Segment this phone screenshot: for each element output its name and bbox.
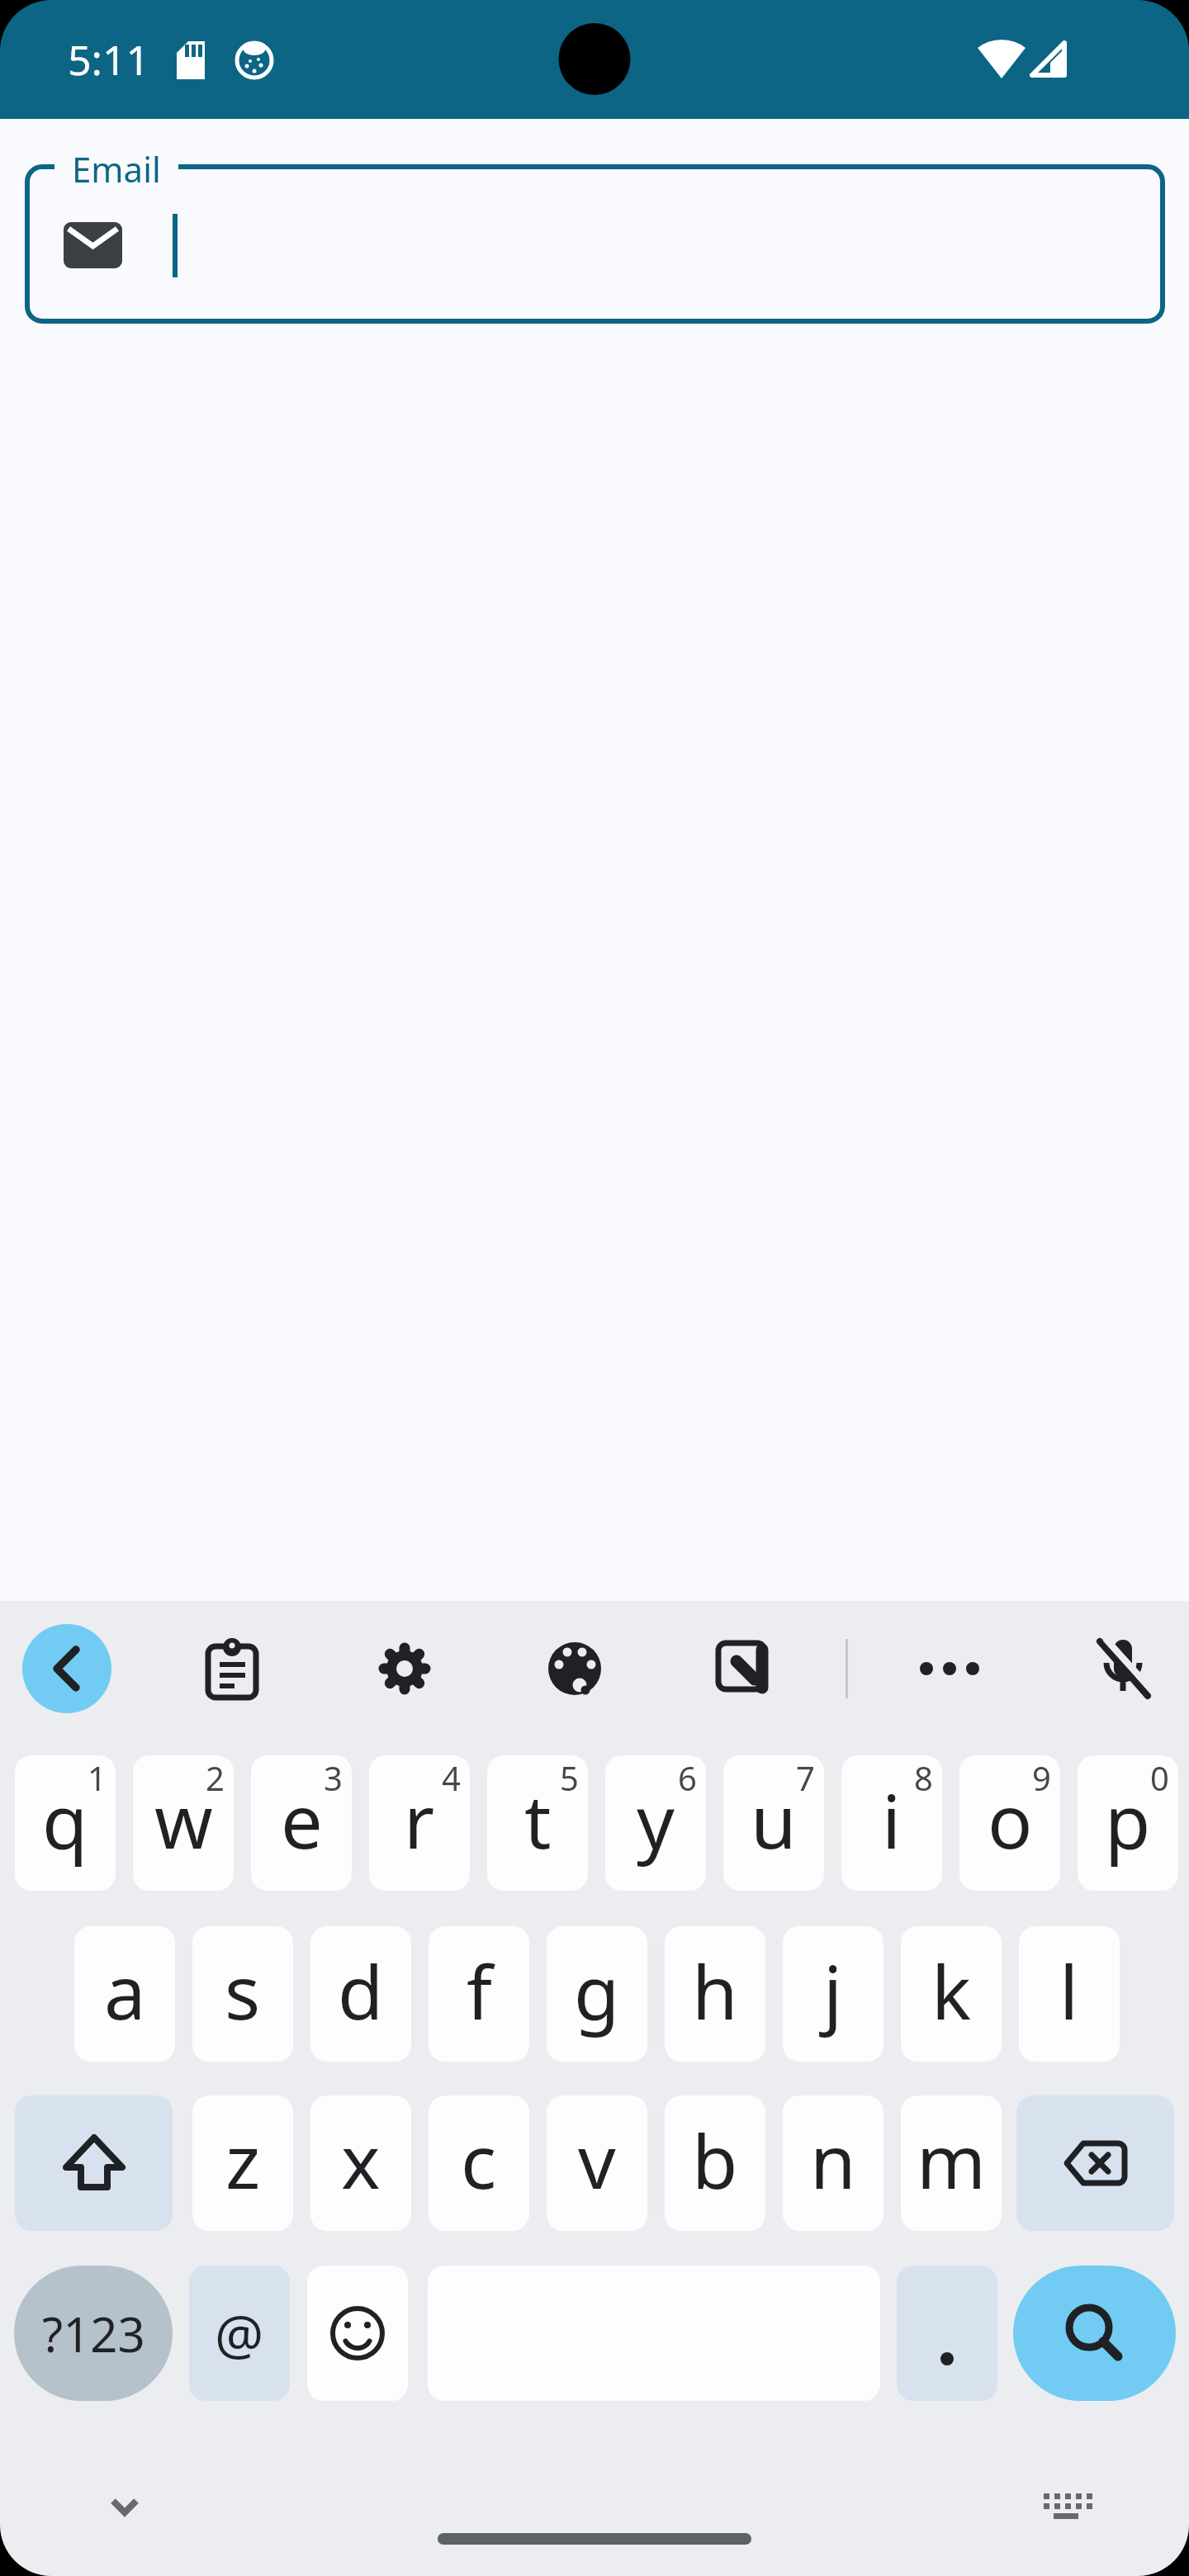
- button[interactable]: o: [959, 1755, 1060, 1891]
- staticText: ?123: [42, 2301, 145, 2366]
- staticText: k: [931, 1940, 972, 2042]
- button[interactable]: r: [369, 1755, 470, 1891]
- button[interactable]: v: [547, 2095, 647, 2231]
- button[interactable]: a: [74, 1926, 175, 2062]
- staticText: 6: [678, 1755, 697, 1798]
- button[interactable]: i: [841, 1755, 942, 1891]
- button[interactable]: f: [429, 1926, 529, 2062]
- button[interactable]: [715, 1640, 775, 1699]
- button[interactable]: j: [783, 1926, 883, 2062]
- staticText: o: [988, 1769, 1033, 1871]
- button[interactable]: [897, 2266, 997, 2401]
- button[interactable]: [915, 1640, 984, 1698]
- staticText: n: [810, 2110, 856, 2211]
- button[interactable]: s: [192, 1926, 293, 2062]
- button[interactable]: [15, 2095, 173, 2231]
- staticText: u: [751, 1769, 797, 1871]
- button[interactable]: x: [310, 2095, 411, 2231]
- staticText: l: [1059, 1940, 1079, 2042]
- staticText: y: [637, 1769, 675, 1871]
- staticText: v: [578, 2110, 616, 2211]
- staticText: h: [692, 1940, 738, 2042]
- staticText: 2: [206, 1755, 225, 1798]
- staticText: @: [215, 2296, 264, 2370]
- staticText: j: [823, 1940, 843, 2042]
- button[interactable]: w: [133, 1755, 234, 1891]
- button[interactable]: z: [192, 2095, 293, 2231]
- button[interactable]: m: [901, 2095, 1002, 2231]
- button[interactable]: [25, 140, 1165, 324]
- staticText: i: [882, 1769, 902, 1871]
- staticText: t: [524, 1769, 552, 1871]
- button[interactable]: ?123: [14, 2266, 173, 2401]
- staticText: 1: [88, 1755, 107, 1798]
- staticText: x: [341, 2110, 381, 2211]
- button[interactable]: t: [487, 1755, 588, 1891]
- button[interactable]: g: [547, 1926, 647, 2062]
- button[interactable]: [307, 2266, 408, 2401]
- button[interactable]: q: [15, 1755, 116, 1891]
- staticText: 4: [442, 1755, 461, 1798]
- staticText: 3: [324, 1755, 343, 1798]
- button[interactable]: p: [1078, 1755, 1178, 1891]
- staticText: s: [225, 1940, 261, 2042]
- button[interactable]: k: [901, 1926, 1002, 2062]
- button[interactable]: [546, 1640, 604, 1698]
- button[interactable]: u: [723, 1755, 824, 1891]
- staticText: r: [404, 1769, 435, 1871]
- staticText: b: [692, 2110, 738, 2211]
- button[interactable]: c: [429, 2095, 529, 2231]
- button[interactable]: [22, 1624, 111, 1713]
- staticText: 0: [1150, 1755, 1169, 1798]
- button[interactable]: d: [310, 1926, 411, 2062]
- staticText: 9: [1032, 1755, 1051, 1798]
- staticText: 5:11: [68, 31, 150, 88]
- staticText: e: [281, 1769, 323, 1871]
- staticText: 8: [914, 1755, 933, 1798]
- staticText: d: [338, 1940, 384, 2042]
- staticText: 5: [560, 1755, 579, 1798]
- staticText: 7: [796, 1755, 815, 1798]
- button[interactable]: [1093, 1638, 1153, 1699]
- button[interactable]: [1016, 2095, 1174, 2231]
- staticText: w: [154, 1769, 213, 1871]
- staticText: f: [467, 1940, 492, 2042]
- button[interactable]: n: [783, 2095, 883, 2231]
- button[interactable]: [376, 1640, 433, 1698]
- button[interactable]: [203, 1640, 261, 1698]
- staticText: p: [1105, 1769, 1151, 1871]
- staticText: Email: [72, 145, 161, 188]
- button[interactable]: l: [1019, 1926, 1120, 2062]
- staticText: m: [917, 2110, 987, 2211]
- button[interactable]: [1040, 2490, 1092, 2523]
- button[interactable]: y: [605, 1755, 706, 1891]
- button[interactable]: [105, 2491, 144, 2524]
- button[interactable]: b: [665, 2095, 765, 2231]
- button[interactable]: h: [665, 1926, 765, 2062]
- staticText: g: [574, 1940, 620, 2042]
- staticText: q: [42, 1769, 88, 1871]
- staticText: c: [461, 2110, 497, 2211]
- staticText: z: [225, 2110, 261, 2211]
- button[interactable]: e: [251, 1755, 352, 1891]
- button[interactable]: @: [189, 2266, 290, 2401]
- staticText: a: [104, 1940, 146, 2042]
- button[interactable]: [1013, 2266, 1176, 2401]
